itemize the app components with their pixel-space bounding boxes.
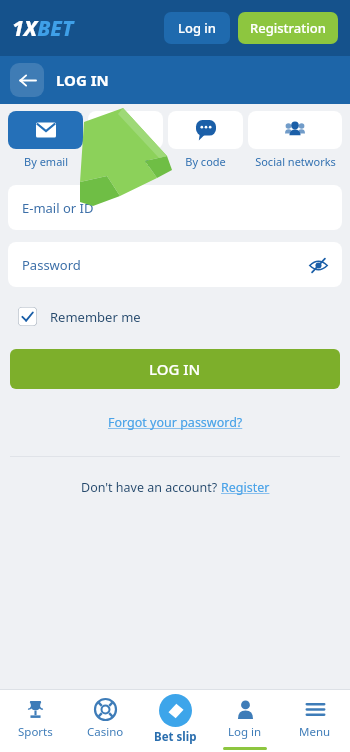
button[interactable]: Forgot your password? xyxy=(104,410,247,435)
button[interactable]: Social networks xyxy=(248,111,342,169)
staticText: 1XBET xyxy=(12,14,74,43)
staticText: Forgot your password? xyxy=(108,414,243,431)
button[interactable]: Remember me xyxy=(18,307,141,326)
button[interactable]: By phone xyxy=(88,111,163,169)
staticText: LOG IN xyxy=(56,70,109,90)
staticText: Sports xyxy=(18,724,53,740)
staticText: Password xyxy=(22,256,81,274)
button[interactable]: LOG IN xyxy=(10,349,340,389)
staticText: By email xyxy=(24,154,68,169)
staticText: Don't have an account? xyxy=(81,479,221,496)
staticText: Bet slip xyxy=(154,729,197,745)
staticText: E-mail or ID xyxy=(22,199,94,217)
staticText: Log in xyxy=(178,19,216,37)
button[interactable]: By email xyxy=(8,111,83,169)
staticText: Registration xyxy=(250,19,326,37)
button[interactable]: Menu xyxy=(280,690,350,752)
staticText: LOG IN xyxy=(149,359,201,379)
button[interactable]: Sports xyxy=(0,690,70,752)
button[interactable]: By code xyxy=(168,111,243,169)
staticText: Log in xyxy=(228,724,262,740)
button[interactable]: Password xyxy=(8,242,342,287)
button[interactable]: E-mail or ID xyxy=(8,185,342,230)
staticText: By code xyxy=(185,154,226,169)
staticText: Remember me xyxy=(50,308,141,326)
button[interactable]: Registration xyxy=(238,12,338,44)
button[interactable]: Show password xyxy=(304,251,332,279)
staticText: By phone xyxy=(101,154,150,169)
button[interactable]: Log in xyxy=(210,690,280,752)
staticText: Register xyxy=(221,479,270,496)
button[interactable]: Casino xyxy=(70,690,140,752)
button[interactable]: Log in xyxy=(164,12,230,44)
staticText: Menu xyxy=(299,724,331,740)
button[interactable]: Bet slip xyxy=(140,690,210,752)
button[interactable]: Back xyxy=(10,63,44,97)
staticText: Casino xyxy=(87,724,124,740)
button[interactable]: Register xyxy=(221,479,270,496)
staticText: Social networks xyxy=(255,154,336,169)
